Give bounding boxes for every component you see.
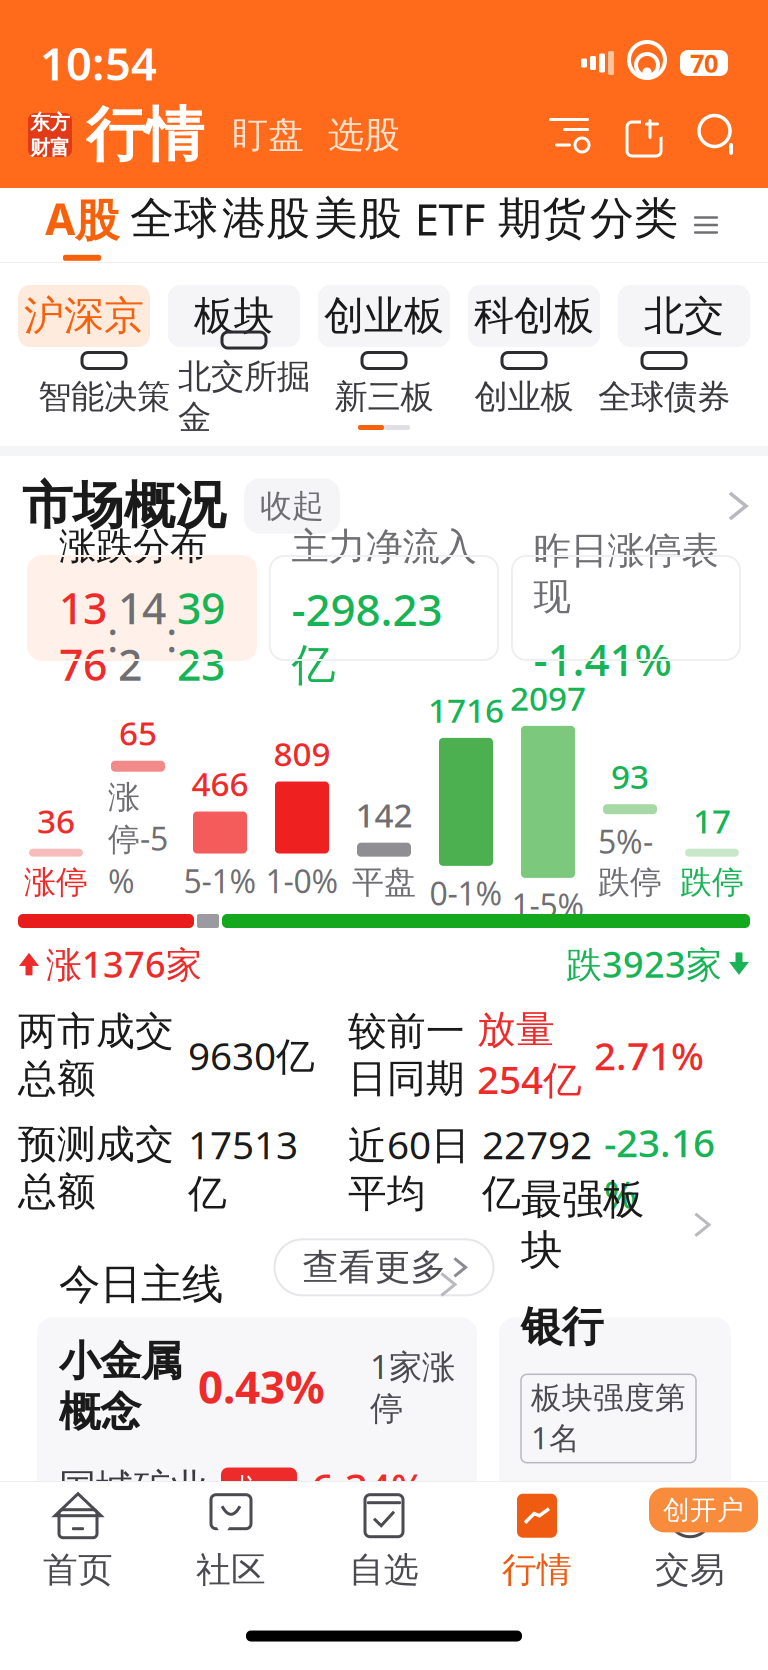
staticText: 5-1% <box>183 859 256 902</box>
staticText: 466 <box>191 761 248 805</box>
button[interactable]: 首页 <box>1 1484 154 1600</box>
staticText: 1-0% <box>265 859 338 902</box>
staticText: 放量254亿 <box>477 1006 582 1105</box>
button[interactable]: 北交所掘金 <box>174 355 314 415</box>
button[interactable]: 沪深京 <box>18 285 150 347</box>
button[interactable]: 分类 <box>588 192 680 258</box>
staticText: 9630亿 <box>188 1030 315 1081</box>
staticText: 5%-跌停 <box>598 820 662 902</box>
staticText: 1家涨停 <box>370 1344 455 1429</box>
staticText: 中国银行 <box>521 1485 560 1670</box>
staticText: 涨停 <box>24 863 88 902</box>
button[interactable]: 港股 <box>220 192 312 258</box>
staticText: 预测成交总额 <box>18 1120 174 1215</box>
staticText: 2097 <box>510 676 586 720</box>
staticText: ETF <box>414 189 485 248</box>
staticText: 分类 <box>590 191 678 245</box>
staticText: 70 <box>690 46 718 80</box>
staticText: 北交所掘金 <box>178 356 310 438</box>
staticText: 国城矿业 <box>59 1465 207 1511</box>
button[interactable]: 智能决策 <box>34 355 174 415</box>
button[interactable]: 主力净流入 <box>270 556 498 660</box>
staticText: 盯盘 <box>232 113 304 157</box>
button[interactable]: 昨日涨停表现 <box>512 556 740 660</box>
staticText: 盛新锂能 <box>59 1540 207 1586</box>
staticText: A股 <box>45 189 119 248</box>
button[interactable]: 全球债券 <box>594 355 734 415</box>
staticText: 选股 <box>328 113 400 157</box>
button[interactable]: ETF <box>404 192 496 258</box>
button[interactable]: 全球 <box>128 192 220 258</box>
button[interactable]: 创业板 <box>454 355 594 415</box>
button[interactable]: 搜索 <box>696 113 740 157</box>
staticText: : <box>107 608 118 664</box>
staticText: 涨跌分布 <box>59 523 207 569</box>
staticText: 科创板 <box>474 291 594 340</box>
button[interactable]: 盯盘 <box>220 105 316 165</box>
staticText: 全球 <box>130 191 218 245</box>
staticText: 北交 <box>644 291 724 340</box>
staticText: 今日主线 <box>59 1259 223 1310</box>
staticText: 创业板 <box>474 376 573 417</box>
staticText: 跌停 <box>680 863 744 902</box>
staticText: 3923 <box>177 579 225 693</box>
button[interactable]: 交易 <box>613 1484 766 1600</box>
button[interactable]: 自选 <box>307 1484 460 1600</box>
staticText: 板块强度第1名 <box>531 1379 686 1458</box>
staticText: 龙二 <box>232 1547 286 1579</box>
button[interactable]: 行情 <box>460 1484 613 1600</box>
button[interactable]: 最强板块 <box>499 1317 731 1531</box>
button[interactable]: 板块 <box>168 285 300 347</box>
staticText: 创开户 <box>663 1494 744 1526</box>
button[interactable]: 今日主线 <box>37 1317 477 1531</box>
staticText: 智能决策 <box>38 376 170 417</box>
staticText: 17 <box>693 798 731 843</box>
staticText: 跌3923家 <box>566 940 722 988</box>
staticText: 2.71% <box>594 1030 704 1081</box>
staticText: 港股 <box>222 191 310 245</box>
staticText: 创业板 <box>324 291 444 340</box>
staticText: 17513亿 <box>188 1119 298 1217</box>
staticText: 市场概况 <box>22 475 226 537</box>
button[interactable]: 美股 <box>312 192 404 258</box>
staticText: 主力净流入 <box>291 524 476 570</box>
button[interactable]: 新三板 <box>314 355 454 415</box>
button[interactable]: 市场概况 <box>0 456 768 556</box>
staticText: 展开 <box>260 1602 324 1641</box>
staticText: 行情 <box>86 99 204 171</box>
button[interactable]: 创业板 <box>318 285 450 347</box>
staticText: 两市成交总额 <box>18 1008 174 1103</box>
button[interactable]: 选股 <box>316 105 412 165</box>
staticText: 沪深京 <box>24 291 144 340</box>
staticText: 新三板 <box>334 376 433 417</box>
staticText: 行情 <box>502 1549 572 1591</box>
staticText: 1-5% <box>511 884 584 926</box>
staticText: 首页 <box>43 1549 113 1591</box>
button[interactable]: 更多分类 <box>680 197 732 253</box>
staticText: 社区 <box>196 1549 266 1591</box>
staticText: 龙一 <box>232 1472 286 1504</box>
staticText: 65 <box>119 710 157 755</box>
staticText: 6.34% <box>311 1461 425 1514</box>
staticText: 1716 <box>428 688 504 732</box>
button[interactable]: 科创板 <box>468 285 600 347</box>
button[interactable]: 北交 <box>618 285 750 347</box>
staticText: 东方 <box>30 110 70 134</box>
staticText: -1.41% <box>533 630 671 688</box>
button[interactable]: 涨跌分布 <box>28 556 256 660</box>
button[interactable]: 期货 <box>496 192 588 258</box>
staticText: 36 <box>37 798 75 843</box>
staticText: 财富 <box>30 135 70 160</box>
button[interactable]: A股 <box>36 192 128 258</box>
button[interactable]: 大盘异动 <box>0 1571 768 1670</box>
staticText: 查看更多 <box>302 1245 446 1289</box>
staticText: 0.43% <box>198 1357 325 1416</box>
button[interactable]: 分享 <box>622 112 666 158</box>
staticText: 1376 <box>59 579 107 693</box>
button[interactable]: 设置 <box>546 113 592 157</box>
staticText: 93 <box>611 754 649 798</box>
button[interactable]: 查看更多 <box>274 1239 494 1295</box>
button[interactable]: 社区 <box>154 1484 307 1600</box>
